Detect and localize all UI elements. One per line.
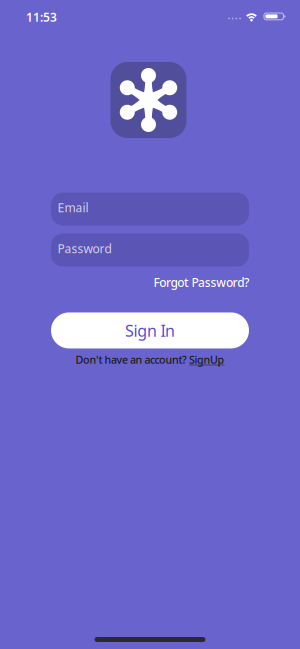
staticText: 11:53 <box>26 9 57 25</box>
staticText: Password <box>57 240 111 256</box>
button[interactable]: Password <box>51 233 249 266</box>
staticText: Forgot Password? <box>153 274 249 290</box>
button[interactable]: Don't have an account? SignUp <box>75 352 224 367</box>
button[interactable]: Email <box>51 192 249 225</box>
staticText: Email <box>57 199 88 215</box>
button[interactable]: Sign In <box>51 312 249 348</box>
staticText: Sign In <box>125 320 175 341</box>
staticText: Don't have an account? SignUp <box>75 352 224 367</box>
button[interactable]: Forgot Password? <box>153 274 249 290</box>
